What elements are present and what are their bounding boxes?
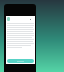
button[interactable] bbox=[7, 59, 34, 63]
button[interactable]: App logo bbox=[7, 17, 10, 21]
